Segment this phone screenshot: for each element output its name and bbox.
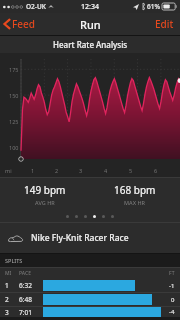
staticText: Heart Rate Analysis bbox=[53, 39, 128, 50]
staticText: MI bbox=[5, 270, 19, 277]
staticText: 2 bbox=[5, 295, 19, 304]
staticText: -4 bbox=[169, 308, 175, 316]
staticText: mi bbox=[5, 167, 21, 174]
staticText: 100 bbox=[9, 144, 19, 151]
button[interactable]: Shoe bbox=[0, 223, 180, 253]
staticText: Nike Fly-Knit Racer Race bbox=[31, 232, 129, 244]
staticText: PACE bbox=[19, 270, 43, 277]
staticText: AVG HR bbox=[35, 199, 55, 206]
button[interactable]: 168 bpm bbox=[90, 178, 180, 210]
staticText: Run bbox=[80, 17, 101, 32]
button[interactable]: Edit bbox=[149, 14, 180, 34]
staticText: Feed bbox=[12, 17, 35, 31]
staticText: 1 bbox=[5, 281, 19, 290]
button[interactable]: 149 bpm bbox=[0, 178, 90, 210]
staticText: 6 bbox=[154, 167, 158, 174]
button[interactable]: 2 bbox=[0, 293, 180, 306]
staticText: 3 bbox=[79, 167, 83, 174]
staticText: 6:48 bbox=[19, 295, 43, 304]
staticText: 5 bbox=[129, 167, 133, 174]
staticText: SPLITS bbox=[5, 257, 23, 264]
button[interactable]: 1 bbox=[0, 279, 180, 292]
staticText: O2-UK bbox=[26, 2, 46, 11]
staticText: 150 bbox=[9, 92, 19, 99]
staticText: 61% bbox=[147, 2, 160, 11]
staticText: 4 bbox=[104, 167, 108, 174]
staticText: 149 bpm bbox=[24, 183, 66, 197]
staticText: 125 bbox=[9, 118, 19, 125]
staticText: 175 bbox=[9, 66, 19, 73]
staticText: 3 bbox=[5, 308, 19, 317]
staticText: -1 bbox=[169, 282, 175, 290]
other: Shoe bbox=[8, 234, 23, 243]
staticText: FT bbox=[169, 270, 175, 277]
staticText: 2 bbox=[55, 167, 59, 174]
button[interactable]: 3 bbox=[0, 307, 180, 317]
staticText: MAX HR bbox=[124, 199, 146, 206]
staticText: 168 bpm bbox=[114, 183, 156, 197]
staticText: 0 bbox=[171, 296, 175, 304]
staticText: 6:32 bbox=[19, 281, 43, 290]
staticText: Edit bbox=[155, 17, 174, 31]
staticText: 1 bbox=[31, 167, 35, 174]
staticText: 12:34 bbox=[81, 2, 99, 12]
staticText: 7:01 bbox=[19, 308, 43, 317]
button[interactable]: Feed bbox=[0, 14, 41, 34]
